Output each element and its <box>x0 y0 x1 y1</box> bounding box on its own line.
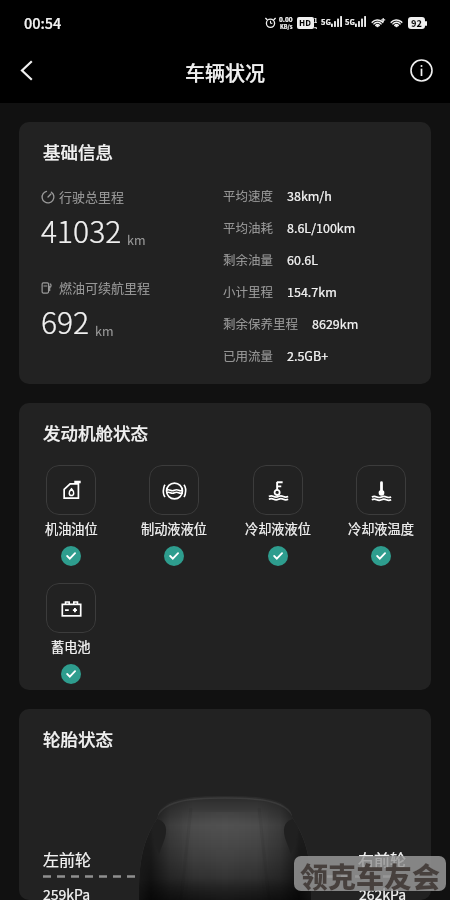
button[interactable]: Info <box>397 46 445 94</box>
staticText: 2 <box>314 26 318 29</box>
staticText: KB/s <box>280 23 293 31</box>
staticText: 领克车友会 <box>300 856 441 891</box>
button[interactable]: 机油油位 <box>21 465 121 566</box>
staticText: 0.00 <box>279 14 293 23</box>
staticText: 8.6L/100km <box>287 218 356 236</box>
staticText: 基础信息 <box>43 139 113 164</box>
staticText: 259kPa <box>43 884 91 900</box>
staticText: 8629km <box>312 314 359 332</box>
staticText: 38km/h <box>287 186 332 204</box>
staticText: 平均油耗 <box>223 218 274 236</box>
staticText: 行驶总里程 <box>59 187 125 206</box>
staticText: 154.7km <box>287 282 337 300</box>
button[interactable]: Back <box>2 46 50 94</box>
staticText: 92 <box>411 17 422 29</box>
staticText: 右前轮 <box>358 847 407 870</box>
button[interactable]: 蓄电池 <box>21 583 121 684</box>
staticText: 262kPa <box>359 884 407 900</box>
staticText: 平均速度 <box>223 186 274 204</box>
button[interactable]: 冷却液液位 <box>228 465 328 566</box>
button[interactable]: 冷却液温度 <box>331 465 431 566</box>
staticText: km <box>127 230 146 248</box>
staticText: 2.5GB+ <box>287 346 329 364</box>
staticText: 剩余油量 <box>223 250 274 268</box>
staticText: 5G <box>321 16 331 27</box>
staticText: 5G <box>345 16 355 27</box>
staticText: 剩余保养里程 <box>223 314 299 332</box>
staticText: 已用流量 <box>223 346 274 364</box>
staticText: 41032 <box>41 208 122 251</box>
staticText: 机油油位 <box>45 519 98 538</box>
staticText: 发动机舱状态 <box>43 420 148 445</box>
staticText: 左前轮 <box>43 847 92 870</box>
staticText: 1 <box>314 17 318 25</box>
button[interactable]: 制动液液位 <box>124 465 224 566</box>
staticText: km <box>95 321 114 339</box>
staticText: 60.6L <box>287 250 319 268</box>
staticText: 692 <box>41 299 90 342</box>
staticText: HD <box>299 17 312 29</box>
staticText: 车辆状况 <box>185 58 265 87</box>
staticText: 00:54 <box>24 12 62 33</box>
staticText: 冷却液温度 <box>348 519 414 538</box>
staticText: 制动液液位 <box>141 519 207 538</box>
staticText: 蓄电池 <box>51 637 91 656</box>
staticText: 轮胎状态 <box>43 726 113 751</box>
staticText: 小计里程 <box>223 282 274 300</box>
staticText: 冷却液液位 <box>245 519 311 538</box>
staticText: 燃油可续航里程 <box>59 278 151 297</box>
